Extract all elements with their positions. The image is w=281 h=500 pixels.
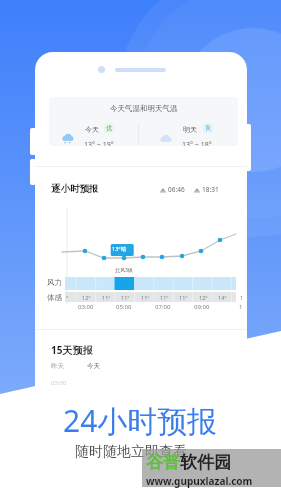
staticText: 06:46	[168, 185, 185, 194]
staticText: 24小时预报	[63, 400, 218, 441]
staticText: 09:00	[194, 303, 210, 311]
staticText: 13° ~ 18°	[182, 140, 212, 146]
staticText: 随时随地立即查看	[75, 443, 187, 461]
staticText: 07:00	[155, 303, 171, 311]
staticText: 03:00	[78, 303, 94, 311]
staticText: 北风3级	[115, 267, 133, 274]
staticText: 风力	[47, 278, 62, 287]
staticText: 今天	[87, 362, 100, 370]
staticText: 昨天	[51, 362, 64, 370]
staticText: 体感	[47, 293, 62, 302]
staticText: 11°	[160, 294, 169, 301]
staticText: 12°	[82, 294, 91, 301]
staticText: 12°	[199, 294, 208, 301]
staticText: °	[66, 294, 69, 301]
staticText: 逐小时预报	[51, 183, 99, 195]
staticText: 13° ~ 19°	[84, 140, 114, 146]
staticText: 11°	[121, 294, 130, 301]
other: Sunrise	[160, 187, 166, 193]
staticText: 05:00	[116, 303, 132, 311]
staticText: 谷普	[146, 452, 180, 473]
staticText: 11°	[102, 294, 111, 301]
staticText: 软件园	[180, 452, 231, 473]
staticText: 11°	[179, 294, 188, 301]
staticText: 03:00	[51, 379, 67, 387]
staticText: 优	[106, 124, 112, 132]
staticText: 18:31	[202, 185, 219, 194]
staticText: 15天预报	[51, 343, 93, 357]
staticText: 今天气温和明天气温	[110, 104, 178, 113]
staticText: 明天	[183, 125, 197, 134]
staticText: 13°晴	[112, 245, 127, 253]
staticText: 14°	[218, 294, 227, 301]
staticText: www.gupuxlazal.com	[146, 474, 253, 488]
staticText: 良	[205, 124, 211, 132]
staticText: 1	[239, 303, 243, 311]
staticText: 今天	[85, 125, 99, 134]
other: Sunrise	[194, 187, 200, 193]
staticText: 11°	[141, 294, 150, 301]
button[interactable]: 今天气温和明天气温	[49, 97, 238, 146]
staticText: 1	[240, 294, 244, 301]
